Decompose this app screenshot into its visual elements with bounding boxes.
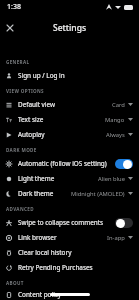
button[interactable]: Dark theme <box>0 186 139 201</box>
button[interactable]: Close <box>0 18 20 38</box>
staticText: Clear local history <box>18 248 72 257</box>
button[interactable]: Toggle <box>115 218 133 228</box>
staticText: ABOUT <box>6 280 24 286</box>
staticText: Swipe to collapse comments <box>18 218 104 227</box>
button[interactable]: Clear local history <box>0 245 139 260</box>
staticText: 1:38 <box>7 2 21 12</box>
staticText: DARK MODE <box>6 147 37 153</box>
button[interactable]: Default view <box>0 97 139 112</box>
button[interactable]: Retry Pending Purchases <box>0 260 139 275</box>
staticText: Content policy <box>18 290 62 299</box>
button[interactable]: Link browser <box>0 230 139 245</box>
button[interactable]: Toggle <box>115 159 133 169</box>
staticText: Automatic (follow iOS setting) <box>18 159 107 168</box>
button[interactable]: Content policy <box>0 289 139 300</box>
staticText: In-app <box>107 234 125 242</box>
staticText: ADVANCED <box>6 206 34 212</box>
staticText: Mango <box>105 116 125 124</box>
button[interactable]: Automatic (follow iOS setting) <box>0 156 139 171</box>
staticText: Sign up / Log in <box>18 71 65 80</box>
button[interactable]: Text size <box>0 112 139 127</box>
button[interactable]: Light theme <box>0 171 139 186</box>
staticText: Midnight (AMOLED) <box>71 190 125 198</box>
staticText: VIEW OPTIONS <box>6 88 45 94</box>
staticText: Card <box>112 101 125 109</box>
staticText: Autoplay <box>18 130 45 139</box>
button[interactable]: Autoplay <box>0 127 139 142</box>
button[interactable]: Sign up / Log in <box>0 68 139 83</box>
staticText: Always <box>106 131 125 139</box>
staticText: Alien blue <box>98 175 125 183</box>
staticText: Dark theme <box>18 189 54 198</box>
staticText: Text size <box>18 115 44 124</box>
staticText: Light theme <box>18 174 55 183</box>
staticText: GENERAL <box>6 59 30 65</box>
staticText: Retry Pending Purchases <box>18 263 93 272</box>
staticText: Settings <box>53 22 87 34</box>
button[interactable]: Swipe to collapse comments <box>0 215 139 230</box>
staticText: Default view <box>18 100 56 109</box>
staticText: Link browser <box>18 233 57 242</box>
